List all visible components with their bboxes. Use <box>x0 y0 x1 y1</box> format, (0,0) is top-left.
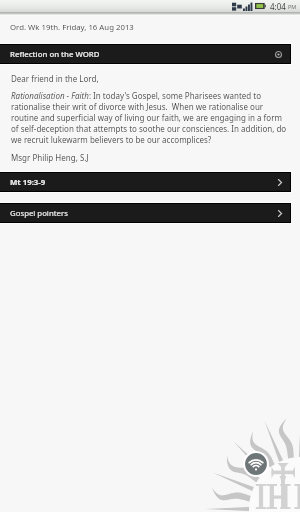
staticText: Reflection on the WORD <box>10 49 100 60</box>
staticText: Ord. Wk 19th. Friday, 16 Aug 2013 <box>10 22 134 33</box>
staticText: PM <box>288 3 297 10</box>
other: Wi-Fi <box>243 451 269 477</box>
staticText: Msgr Philip Heng, S.J <box>11 152 89 163</box>
staticText: Dear friend in the Lord, <box>11 73 99 84</box>
staticText: Gospel pointers <box>10 208 68 219</box>
other: Options <box>275 51 282 58</box>
staticText: Mt 19:3-9 <box>10 177 46 188</box>
other: Open <box>278 210 282 217</box>
button[interactable]: Reflection on the WORD <box>0 45 290 63</box>
button[interactable]: Mt 19:3-9 <box>0 173 290 191</box>
button[interactable]: Gospel pointers <box>0 204 290 222</box>
staticText: Rationalisation - Faith: In today's Gosp… <box>11 90 291 145</box>
staticText: 4:04 <box>270 1 286 12</box>
other: Open <box>278 179 282 186</box>
